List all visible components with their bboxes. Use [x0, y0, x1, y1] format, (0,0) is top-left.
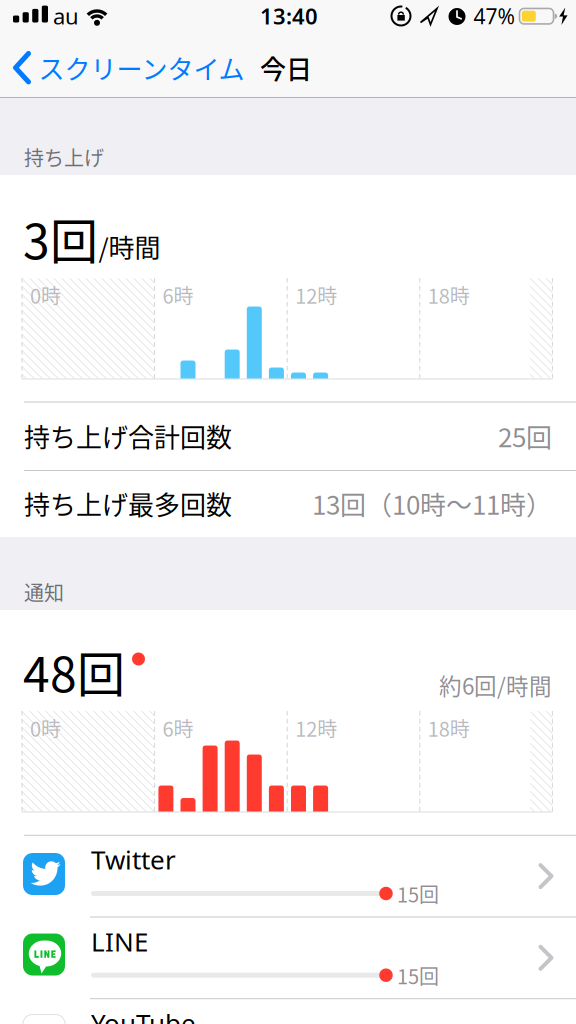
staticText: 通知: [24, 577, 64, 606]
staticText: 今日: [260, 49, 312, 86]
staticText: /時間: [98, 228, 160, 265]
staticText: 12時: [295, 713, 337, 742]
staticText: 47%: [473, 2, 514, 30]
staticText: 12時: [295, 280, 337, 309]
staticText: スクリーンタイム: [38, 49, 244, 86]
staticText: 48回: [23, 636, 125, 706]
staticText: 15回: [397, 879, 439, 908]
staticText: LINE: [91, 924, 148, 959]
staticText: 13:40: [260, 1, 318, 31]
staticText: 3回: [23, 203, 98, 273]
staticText: 0時: [30, 713, 61, 742]
staticText: 6時: [163, 280, 194, 309]
staticText: Twitter: [91, 842, 176, 877]
staticText: au: [53, 1, 79, 31]
staticText: 6時: [163, 713, 194, 742]
staticText: 18時: [428, 713, 470, 742]
staticText: 約6回/時間: [439, 669, 552, 701]
staticText: 持ち上げ合計回数: [24, 417, 232, 455]
staticText: 0時: [30, 280, 61, 309]
staticText: 15回: [397, 961, 439, 990]
staticText: YouTube: [91, 1005, 196, 1024]
staticText: 13回（10時〜11時）: [312, 485, 552, 522]
staticText: 18時: [428, 280, 470, 309]
staticText: 持ち上げ: [24, 142, 104, 171]
staticText: 25回: [498, 417, 552, 455]
staticText: 持ち上げ最多回数: [24, 485, 232, 522]
